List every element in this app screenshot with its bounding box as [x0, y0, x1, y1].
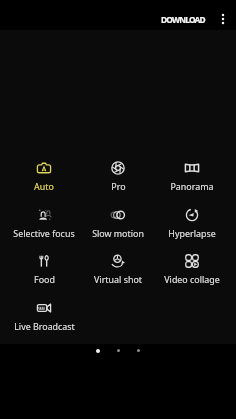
button[interactable]: Selective focus: [7, 202, 81, 246]
staticText: Slow motion: [92, 227, 144, 239]
staticText: Hyperlapse: [168, 227, 216, 239]
staticText: Live Broadcast: [14, 320, 75, 332]
button[interactable]: Auto: [7, 155, 81, 199]
button[interactable]: Slow motion: [81, 202, 155, 246]
staticText: Auto: [34, 180, 54, 192]
staticText: Panorama: [170, 180, 214, 192]
button[interactable]: Virtual shot: [81, 248, 155, 292]
button[interactable]: Page 2: [108, 344, 128, 357]
staticText: Pro: [111, 180, 126, 192]
staticText: Food: [34, 273, 55, 285]
staticText: Selective focus: [13, 227, 75, 239]
button[interactable]: Pro: [81, 155, 155, 199]
button[interactable]: Page 3: [128, 344, 148, 357]
button[interactable]: Live Broadcast: [7, 295, 81, 339]
button[interactable]: Video collage: [155, 248, 229, 292]
button[interactable]: Panorama: [155, 155, 229, 199]
button[interactable]: More options: [210, 6, 236, 32]
button[interactable]: Hyperlapse: [155, 202, 229, 246]
staticText: DOWNLOAD: [161, 14, 205, 25]
staticText: Virtual shot: [94, 273, 142, 285]
staticText: Video collage: [164, 273, 220, 285]
button[interactable]: DOWNLOAD: [156, 9, 210, 30]
button[interactable]: Food: [7, 248, 81, 292]
button[interactable]: Page 1: [88, 344, 108, 357]
